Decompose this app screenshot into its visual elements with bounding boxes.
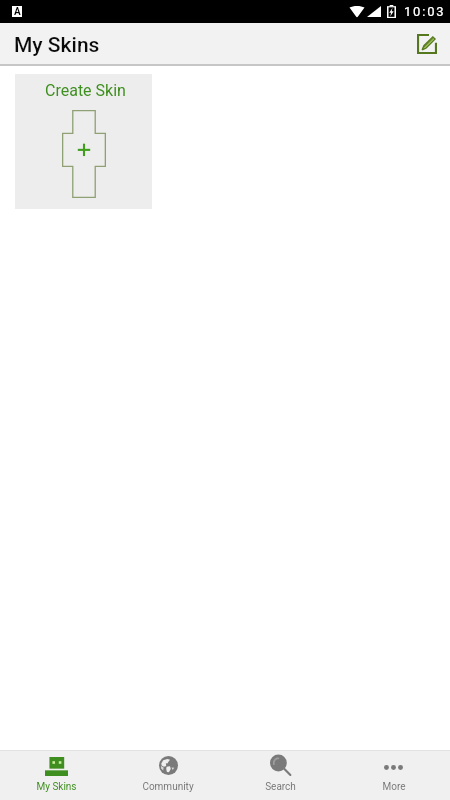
button[interactable]: Search	[224, 751, 337, 800]
staticText: Create Skin	[45, 81, 126, 100]
staticText: Community	[142, 781, 194, 793]
staticText: My Skins	[14, 33, 100, 58]
button[interactable]: My Skins	[0, 751, 112, 800]
staticText: More	[382, 781, 406, 793]
button[interactable]: Create Skin	[15, 74, 152, 209]
staticText: Search	[265, 781, 296, 793]
staticText: My Skins	[36, 781, 77, 793]
staticText: A	[14, 6, 21, 17]
button[interactable]: More	[337, 751, 450, 800]
button[interactable]: Community	[112, 751, 224, 800]
button[interactable]: Edit	[410, 27, 444, 61]
staticText: 10:03	[404, 4, 446, 19]
